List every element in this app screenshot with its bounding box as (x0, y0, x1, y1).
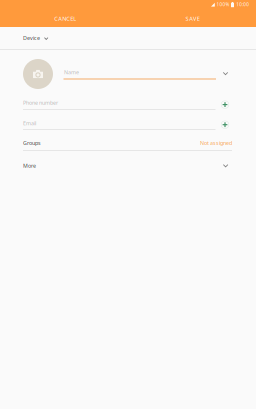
button[interactable]: Name details (218, 67, 232, 81)
button[interactable]: Groups (23, 132, 232, 153)
staticText: 100% (217, 1, 230, 8)
button[interactable]: Add email (221, 121, 229, 128)
staticText: Groups (23, 139, 41, 147)
staticText: Not assigned (200, 139, 232, 147)
button[interactable]: CANCEL (1, 10, 129, 28)
button[interactable]: Device (0, 27, 256, 49)
staticText: Email (23, 120, 36, 127)
staticText: Phone number (23, 99, 58, 106)
staticText: CANCEL (54, 15, 76, 22)
staticText: More (23, 162, 36, 169)
staticText: SAVE (185, 15, 200, 22)
button[interactable]: Add phone number (221, 101, 229, 108)
staticText: Name (64, 69, 79, 76)
staticText: 10:00 (236, 1, 249, 8)
button[interactable]: More (23, 155, 232, 177)
staticText: Device (23, 34, 40, 42)
button[interactable]: Add photo (23, 59, 53, 89)
button[interactable]: SAVE (129, 10, 256, 28)
